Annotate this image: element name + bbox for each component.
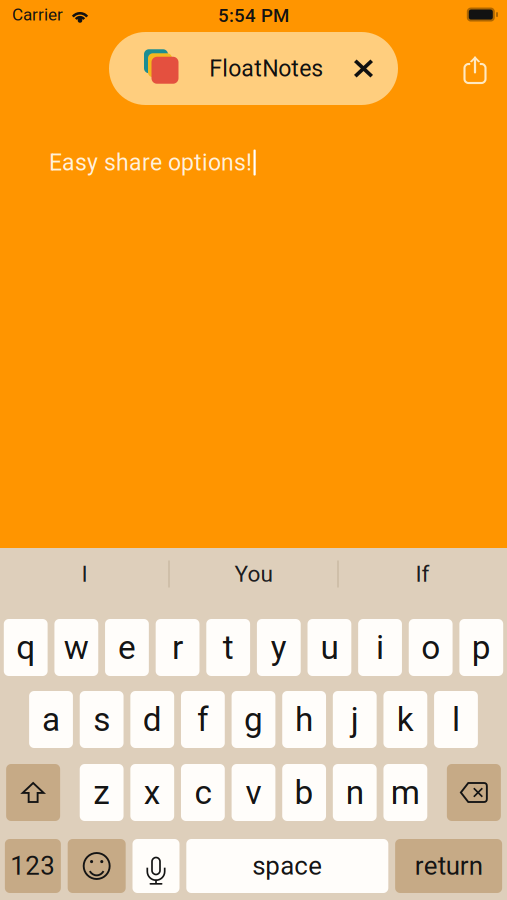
button[interactable]: t bbox=[206, 619, 250, 676]
staticText: v bbox=[245, 773, 261, 812]
staticText: j bbox=[351, 700, 359, 739]
staticText: space bbox=[252, 851, 322, 881]
button[interactable]: If bbox=[338, 548, 506, 600]
button[interactable]: f bbox=[181, 691, 225, 748]
button[interactable]: p bbox=[459, 619, 503, 676]
button[interactable]: v bbox=[232, 764, 275, 821]
staticText: a bbox=[42, 700, 60, 739]
staticText: h bbox=[295, 700, 313, 739]
button[interactable]: Delete bbox=[447, 764, 501, 821]
button[interactable]: y bbox=[257, 619, 301, 676]
button[interactable]: m bbox=[383, 764, 427, 821]
button[interactable]: s bbox=[80, 691, 123, 748]
staticText: p bbox=[472, 628, 491, 667]
staticText: l bbox=[452, 700, 460, 739]
staticText: x bbox=[144, 773, 161, 812]
button[interactable]: Shift bbox=[6, 764, 60, 821]
button[interactable]: q bbox=[4, 619, 48, 676]
button[interactable]: h bbox=[282, 691, 326, 748]
button[interactable]: l bbox=[434, 691, 478, 748]
staticText: i bbox=[376, 628, 384, 667]
button[interactable]: u bbox=[307, 619, 351, 676]
button[interactable]: e bbox=[105, 619, 149, 676]
staticText: m bbox=[391, 773, 420, 812]
button[interactable]: Share bbox=[451, 45, 499, 93]
staticText: b bbox=[295, 773, 314, 812]
button[interactable]: r bbox=[156, 619, 199, 676]
staticText: If bbox=[415, 561, 429, 587]
button[interactable]: w bbox=[54, 619, 98, 676]
button[interactable]: z bbox=[80, 764, 123, 821]
staticText: s bbox=[93, 700, 110, 739]
button[interactable]: space bbox=[186, 839, 388, 893]
staticText: I bbox=[81, 561, 87, 587]
button[interactable]: n bbox=[333, 764, 377, 821]
staticText: t bbox=[223, 628, 234, 667]
staticText: r bbox=[172, 628, 183, 667]
button[interactable]: d bbox=[130, 691, 174, 748]
button[interactable]: FloatNotes bbox=[109, 32, 398, 105]
button[interactable]: c bbox=[181, 764, 225, 821]
button[interactable]: 123 bbox=[5, 839, 61, 893]
button[interactable]: return bbox=[395, 839, 502, 893]
button[interactable]: j bbox=[333, 691, 377, 748]
button[interactable]: a bbox=[29, 691, 73, 748]
button[interactable]: o bbox=[409, 619, 453, 676]
button[interactable]: Emoji bbox=[68, 839, 126, 893]
staticText: o bbox=[421, 628, 440, 667]
staticText: u bbox=[320, 628, 338, 667]
staticText: f bbox=[197, 700, 209, 739]
button[interactable]: k bbox=[383, 691, 427, 748]
staticText: 123 bbox=[10, 851, 55, 881]
button[interactable]: i bbox=[358, 619, 402, 676]
button[interactable]: You bbox=[169, 548, 337, 600]
staticText: return bbox=[415, 851, 483, 881]
staticText: k bbox=[397, 700, 414, 739]
button[interactable]: x bbox=[130, 764, 174, 821]
staticText: Easy share options! bbox=[49, 149, 252, 176]
staticText: e bbox=[118, 628, 136, 667]
staticText: y bbox=[271, 628, 287, 667]
button[interactable]: g bbox=[232, 691, 275, 748]
staticText: c bbox=[194, 773, 211, 812]
staticText: q bbox=[16, 628, 35, 667]
button[interactable]: I bbox=[0, 548, 168, 600]
staticText: w bbox=[64, 628, 89, 667]
staticText: d bbox=[143, 700, 162, 739]
staticText: n bbox=[346, 773, 364, 812]
staticText: FloatNotes bbox=[209, 55, 323, 82]
button[interactable]: b bbox=[282, 764, 326, 821]
staticText: Carrier bbox=[12, 5, 63, 25]
staticText: You bbox=[234, 561, 272, 587]
staticText: z bbox=[93, 773, 110, 812]
button[interactable]: Dictate bbox=[132, 839, 179, 893]
staticText: 5:54 PM bbox=[218, 5, 289, 26]
staticText: g bbox=[244, 700, 263, 739]
